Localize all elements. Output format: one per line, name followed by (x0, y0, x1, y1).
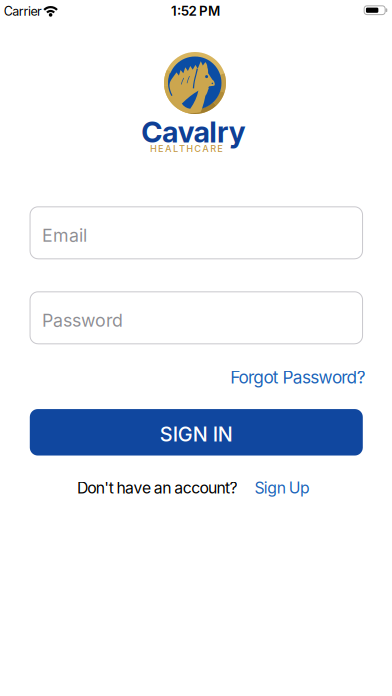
staticText: SIGN IN (160, 422, 233, 446)
button[interactable]: SIGN IN (30, 409, 363, 456)
staticText: E (158, 143, 164, 154)
button[interactable]: Email (30, 207, 363, 259)
staticText: Don't have an account? (77, 478, 237, 497)
button[interactable]: Password (30, 292, 363, 344)
staticText: L (173, 143, 178, 154)
staticText: H (186, 143, 193, 154)
staticText: T (179, 143, 185, 154)
staticText: R (210, 143, 216, 154)
staticText: Password (42, 310, 123, 331)
staticText: Sign Up (254, 478, 310, 497)
staticText: Email (42, 225, 87, 246)
staticText: A (202, 143, 209, 154)
staticText: A (165, 143, 172, 154)
button[interactable]: Forgot Password? (230, 367, 366, 388)
staticText: Carrier (4, 4, 42, 19)
staticText: Cavalry (141, 114, 246, 149)
staticText: C (194, 143, 201, 154)
staticText: Forgot Password? (230, 367, 366, 388)
staticText: E (217, 143, 223, 154)
staticText: 1:52 PM (171, 3, 220, 19)
button[interactable]: Sign Up (254, 478, 310, 497)
staticText: H (150, 143, 157, 154)
